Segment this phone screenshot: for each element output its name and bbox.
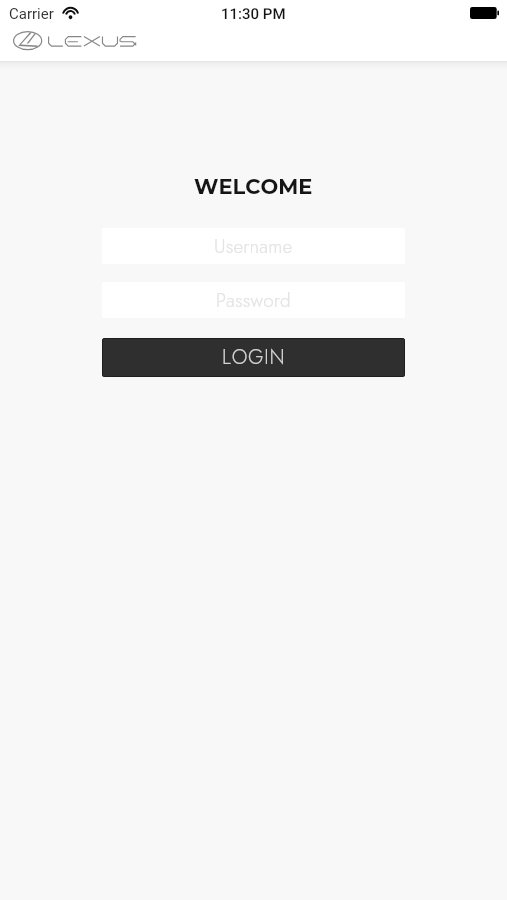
button[interactable]: Password <box>102 282 405 318</box>
staticText: 11:30 PM <box>221 5 286 23</box>
button[interactable]: LOGIN <box>102 338 405 377</box>
staticText: WELCOME <box>194 174 313 200</box>
other: Battery <box>470 7 499 19</box>
button[interactable]: Username <box>102 228 405 264</box>
other: Wi-Fi <box>62 7 79 20</box>
other: Lexus <box>13 31 141 52</box>
staticText: LOGIN <box>222 343 286 372</box>
staticText: Carrier <box>9 5 54 23</box>
staticText: Password <box>216 287 291 314</box>
staticText: Username <box>214 233 293 260</box>
